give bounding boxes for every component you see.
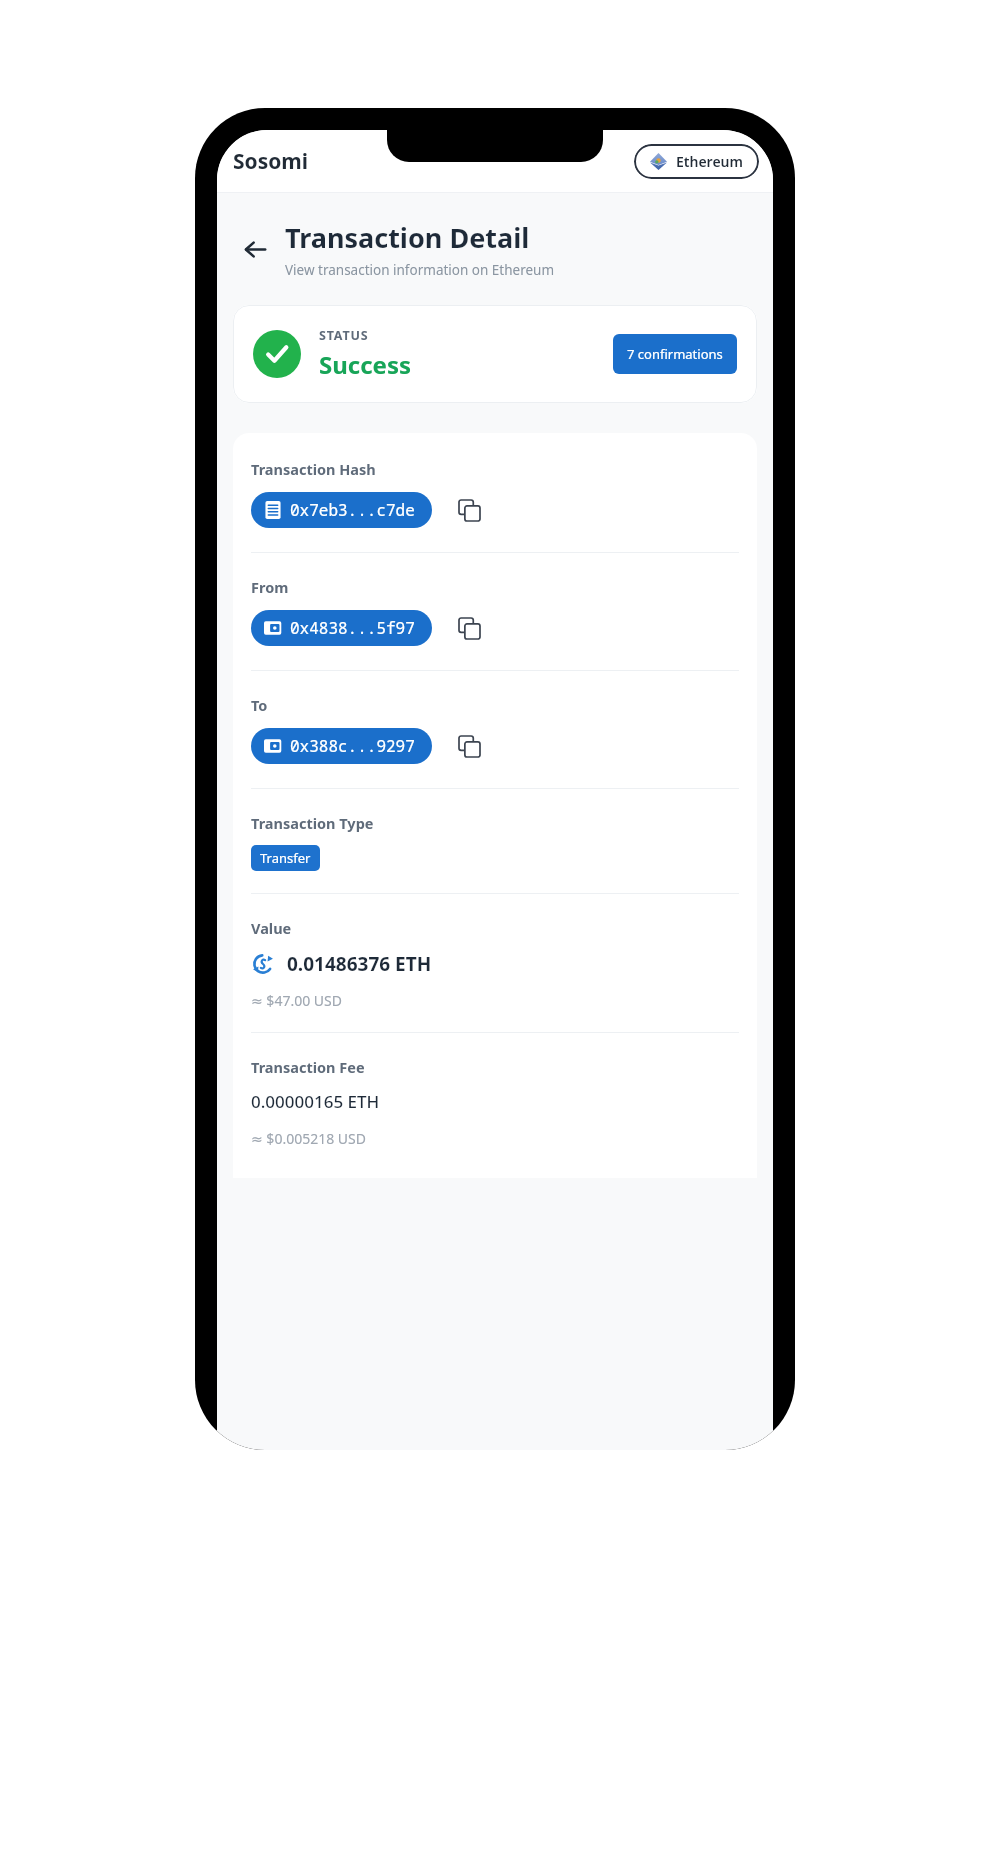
staticText: Sosomi: [233, 147, 309, 176]
staticText: STATUS: [319, 327, 369, 344]
staticText: 7 confirmations: [627, 345, 723, 363]
button[interactable]: 0x7eb3...c7de: [251, 492, 432, 528]
staticText: Value: [251, 918, 292, 938]
staticText: ≈ $0.005218 USD: [251, 1129, 366, 1148]
button[interactable]: 7 confirmations: [613, 334, 737, 374]
staticText: From: [251, 577, 289, 597]
button[interactable]: Copy: [452, 493, 486, 527]
button[interactable]: 0x388c...9297: [251, 728, 432, 764]
staticText: 0x388c...9297: [290, 735, 415, 757]
button[interactable]: STATUS: [233, 305, 757, 403]
staticText: Success: [319, 348, 412, 381]
staticText: View transaction information on Ethereum: [285, 261, 555, 279]
staticText: ≈ $47.00 USD: [251, 991, 342, 1010]
staticText: Transfer: [260, 849, 311, 867]
staticText: 0.01486376 ETH: [287, 951, 432, 977]
staticText: 0x7eb3...c7de: [290, 499, 415, 521]
button[interactable]: Transfer: [251, 845, 320, 871]
staticText: 0x4838...5f97: [290, 617, 415, 639]
button[interactable]: Copy: [452, 729, 486, 763]
staticText: 0.00000165 ETH: [251, 1090, 380, 1113]
staticText: Transaction Fee: [251, 1057, 365, 1077]
staticText: To: [251, 695, 268, 715]
staticText: Transaction Detail: [285, 219, 530, 256]
staticText: Ethereum: [676, 152, 743, 171]
button[interactable]: 0x4838...5f97: [251, 610, 432, 646]
button[interactable]: Copy: [452, 611, 486, 645]
staticText: Transaction Type: [251, 813, 374, 833]
staticText: Transaction Hash: [251, 459, 376, 479]
button[interactable]: Ethereum: [634, 144, 759, 179]
button[interactable]: Back: [235, 229, 275, 269]
